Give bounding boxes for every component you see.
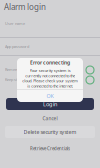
staticText: Remember me xyxy=(5,67,32,72)
staticText: Log in xyxy=(43,100,57,108)
staticText: Error connecting xyxy=(30,59,70,66)
button[interactable]: Retrieve Credentials xyxy=(0,145,100,152)
staticText: Retrieve Credentials xyxy=(30,146,70,151)
staticText: Your security system is currently not co… xyxy=(22,68,78,88)
button[interactable]: OK xyxy=(17,90,83,102)
button[interactable]: Log in xyxy=(6,98,94,110)
button[interactable]: Cancel xyxy=(0,115,100,122)
staticText: Delete security system xyxy=(23,128,76,135)
staticText: Alarm login xyxy=(4,2,46,12)
button[interactable]: Delete security system xyxy=(5,126,95,138)
staticText: Keep signed in xyxy=(5,77,29,82)
staticText: App password xyxy=(5,44,29,49)
staticText: Cancel xyxy=(42,115,57,122)
staticText: OK xyxy=(46,92,53,100)
staticText: User name xyxy=(5,21,25,26)
